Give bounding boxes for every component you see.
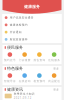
button[interactable]: 新冠疫苗接种: [2, 36, 61, 43]
button[interactable]: 药品配送: [47, 72, 62, 84]
button[interactable]: 门诊缴费: [17, 51, 32, 63]
staticText: 在线咨询: [19, 79, 31, 83]
staticText: 报告查询: [33, 58, 45, 62]
button[interactable]: 更多: [53, 88, 59, 91]
staticText: 特色服务: [7, 66, 23, 71]
staticText: 药品配送: [48, 79, 60, 83]
staticText: 新冠疫苗接种: [10, 38, 28, 41]
button[interactable]: 健康体检预约: [2, 21, 61, 28]
staticText: 用户信息安全通告: [10, 16, 34, 19]
staticText: 更多: [53, 88, 59, 91]
staticText: 开诊通知: [10, 30, 22, 34]
staticText: 2021-09-12: [14, 96, 32, 100]
button[interactable]: 用户信息安全通告: [2, 14, 61, 21]
button[interactable]: 秋季养生小知识: [2, 92, 61, 100]
staticText: 健康服务: [24, 4, 40, 9]
button[interactable]: 报告查询: [32, 51, 47, 63]
staticText: 健康体检预约: [10, 23, 28, 26]
staticText: 健康资讯: [7, 87, 23, 92]
button[interactable]: 检查预约: [32, 72, 47, 84]
button[interactable]: 开诊通知: [2, 28, 61, 36]
staticText: 便民服务: [7, 45, 23, 50]
staticText: 门诊缴费: [19, 58, 31, 62]
button[interactable]: 在线咨询: [17, 72, 32, 84]
staticText: 智能导诊: [4, 79, 16, 83]
button[interactable]: 更多: [53, 67, 59, 70]
button[interactable]: 智能导诊: [2, 72, 17, 84]
staticText: 预约挂号: [4, 58, 16, 62]
staticText: 更多: [53, 67, 59, 70]
staticText: 秋季养生小知识: [14, 92, 35, 96]
staticText: 住院服务: [48, 58, 60, 62]
button[interactable]: 预约挂号: [2, 51, 17, 63]
button[interactable]: 住院服务: [47, 51, 62, 63]
staticText: 检查预约: [33, 79, 45, 83]
